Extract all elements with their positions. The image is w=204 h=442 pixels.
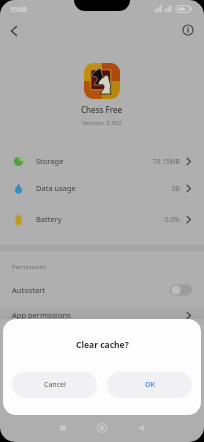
staticText: 10:00 <box>10 5 27 14</box>
button[interactable]: OK <box>107 372 192 398</box>
button[interactable]: Battery <box>0 205 204 233</box>
staticText: Cancel <box>44 380 66 390</box>
staticText: Storage <box>36 156 64 166</box>
staticText: Version: 3.302 <box>82 119 122 127</box>
staticText: Data usage <box>36 183 76 193</box>
button[interactable] <box>6 23 22 39</box>
button[interactable]: Data usage <box>0 174 204 202</box>
button[interactable]: Autostart <box>0 276 204 304</box>
staticText: 70.15MB <box>153 157 180 166</box>
staticText: App permissions <box>12 310 71 320</box>
button[interactable]: Storage <box>0 147 204 175</box>
staticText: Clear cache? <box>76 339 129 351</box>
button[interactable] <box>93 419 111 437</box>
staticText: 0B <box>172 184 180 193</box>
staticText: 0.0% <box>165 215 180 224</box>
staticText: Battery <box>36 214 62 224</box>
button[interactable] <box>132 419 150 437</box>
staticText: Autostart <box>12 285 45 295</box>
staticText: Permissions <box>12 263 47 271</box>
staticText: OK <box>145 380 155 390</box>
button[interactable]: App permissions <box>0 304 204 326</box>
button[interactable] <box>180 22 196 38</box>
button[interactable] <box>54 419 72 437</box>
staticText: Chess Free <box>81 104 123 115</box>
button[interactable]: Cancel <box>12 372 97 398</box>
